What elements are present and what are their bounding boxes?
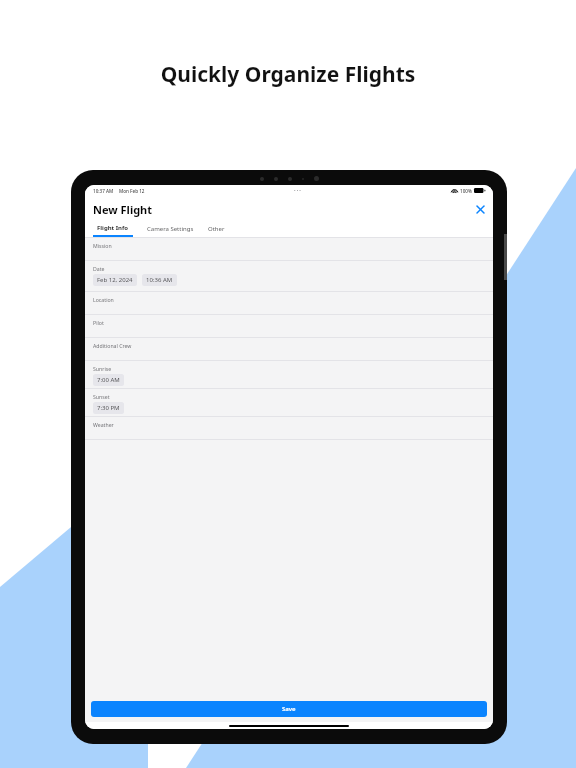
button[interactable]: Save: [91, 701, 487, 717]
staticText: Additional Crew: [93, 342, 132, 349]
button[interactable]: Close: [473, 202, 487, 216]
staticText: Date: [93, 265, 105, 272]
staticText: Quickly Organize Flights: [0, 60, 576, 89]
button[interactable]: 7:00 AM: [93, 374, 124, 386]
button[interactable]: 7:30 PM: [93, 402, 124, 414]
button[interactable]: Flight Info: [93, 222, 133, 237]
staticText: New Flight: [93, 202, 153, 217]
staticText: Mon Feb 12: [119, 188, 145, 194]
staticText: 100%: [460, 188, 472, 194]
staticText: Sunset: [93, 393, 110, 400]
staticText: • • •: [294, 188, 301, 194]
staticText: Weather: [93, 421, 114, 428]
staticText: Mission: [93, 242, 112, 249]
staticText: Save: [282, 705, 296, 713]
staticText: 10:37 AM: [93, 188, 114, 194]
staticText: 7:00 AM: [97, 376, 120, 384]
button[interactable]: 10:36 AM: [142, 274, 177, 286]
staticText: 10:36 AM: [146, 276, 173, 284]
staticText: Other: [208, 225, 225, 233]
button[interactable]: Other: [208, 222, 225, 237]
staticText: Feb 12, 2024: [97, 276, 133, 284]
staticText: Location: [93, 296, 114, 303]
staticText: Flight Info: [97, 224, 129, 232]
staticText: Camera Settings: [147, 225, 194, 233]
button[interactable]: Camera Settings: [147, 222, 194, 237]
staticText: Sunrise: [93, 365, 112, 372]
button[interactable]: Feb 12, 2024: [93, 274, 137, 286]
staticText: Pilot: [93, 319, 104, 326]
staticText: 7:30 PM: [97, 404, 120, 412]
